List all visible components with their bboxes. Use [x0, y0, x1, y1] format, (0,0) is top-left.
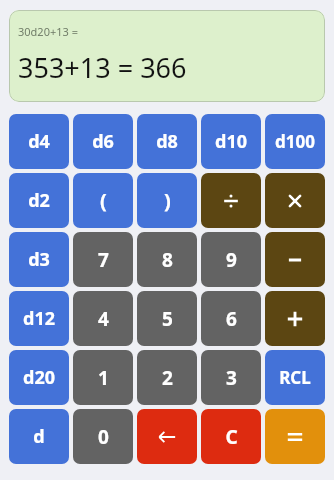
staticText: d100	[275, 130, 315, 153]
button[interactable]: C	[201, 409, 261, 464]
button[interactable]: Equals	[265, 409, 325, 464]
staticText: 2	[162, 365, 173, 391]
button[interactable]: Multiply	[265, 173, 325, 228]
staticText: 6	[226, 306, 237, 332]
staticText: 8	[162, 247, 173, 273]
staticText: d10	[215, 129, 247, 154]
staticText: d4	[28, 129, 50, 154]
button[interactable]: 0	[73, 409, 133, 464]
button[interactable]: 4	[73, 291, 133, 346]
staticText: (	[100, 187, 107, 214]
button[interactable]: d20	[9, 350, 69, 405]
button[interactable]: d3	[9, 232, 69, 287]
staticText: 353+13 = 366	[18, 49, 187, 86]
staticText: d3	[28, 247, 50, 272]
button[interactable]: (	[73, 173, 133, 228]
button[interactable]: Plus	[265, 291, 325, 346]
staticText: 30d20+13 =	[18, 24, 78, 39]
staticText: d20	[23, 365, 55, 390]
button[interactable]: 5	[137, 291, 197, 346]
staticText: 7	[98, 247, 109, 273]
button[interactable]: 8	[137, 232, 197, 287]
button[interactable]: )	[137, 173, 197, 228]
button[interactable]: d12	[9, 291, 69, 346]
button[interactable]: Backspace	[137, 409, 197, 464]
staticText: C	[225, 424, 238, 450]
staticText: 5	[162, 306, 173, 332]
button[interactable]: 9	[201, 232, 261, 287]
staticText: )	[164, 187, 171, 214]
staticText: 9	[226, 247, 237, 273]
button[interactable]: 7	[73, 232, 133, 287]
staticText: 4	[98, 306, 109, 332]
button[interactable]: 2	[137, 350, 197, 405]
button[interactable]: 1	[73, 350, 133, 405]
button[interactable]: d6	[73, 114, 133, 169]
staticText: d8	[156, 129, 178, 154]
staticText: d6	[92, 129, 114, 154]
staticText: d2	[28, 188, 50, 213]
staticText: 3	[226, 365, 237, 391]
button[interactable]: d	[9, 409, 69, 464]
staticText: RCL	[279, 366, 311, 389]
button[interactable]: 30d20+13 =	[9, 10, 325, 102]
button[interactable]: d4	[9, 114, 69, 169]
button[interactable]: 6	[201, 291, 261, 346]
button[interactable]: 3	[201, 350, 261, 405]
button[interactable]: d8	[137, 114, 197, 169]
staticText: d	[33, 424, 45, 449]
staticText: d12	[23, 306, 55, 331]
button[interactable]: RCL	[265, 350, 325, 405]
button[interactable]: Minus	[265, 232, 325, 287]
button[interactable]: Divide	[201, 173, 261, 228]
button[interactable]: d10	[201, 114, 261, 169]
staticText: 1	[98, 365, 109, 391]
staticText: 0	[98, 424, 109, 450]
button[interactable]: d2	[9, 173, 69, 228]
button[interactable]: d100	[265, 114, 325, 169]
